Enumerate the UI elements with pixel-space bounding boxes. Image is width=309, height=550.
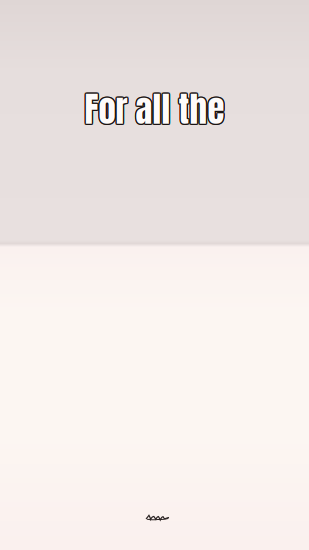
staticText: For all the [84, 84, 224, 136]
staticText: For all the [84, 83, 224, 135]
staticText: For all the [83, 83, 223, 135]
staticText: For all the [84, 82, 224, 134]
staticText: For all the [84, 82, 224, 134]
staticText: For all the [86, 83, 226, 135]
staticText: For all the [84, 84, 224, 136]
staticText: For all the [85, 84, 225, 136]
staticText: For all the [85, 82, 225, 134]
